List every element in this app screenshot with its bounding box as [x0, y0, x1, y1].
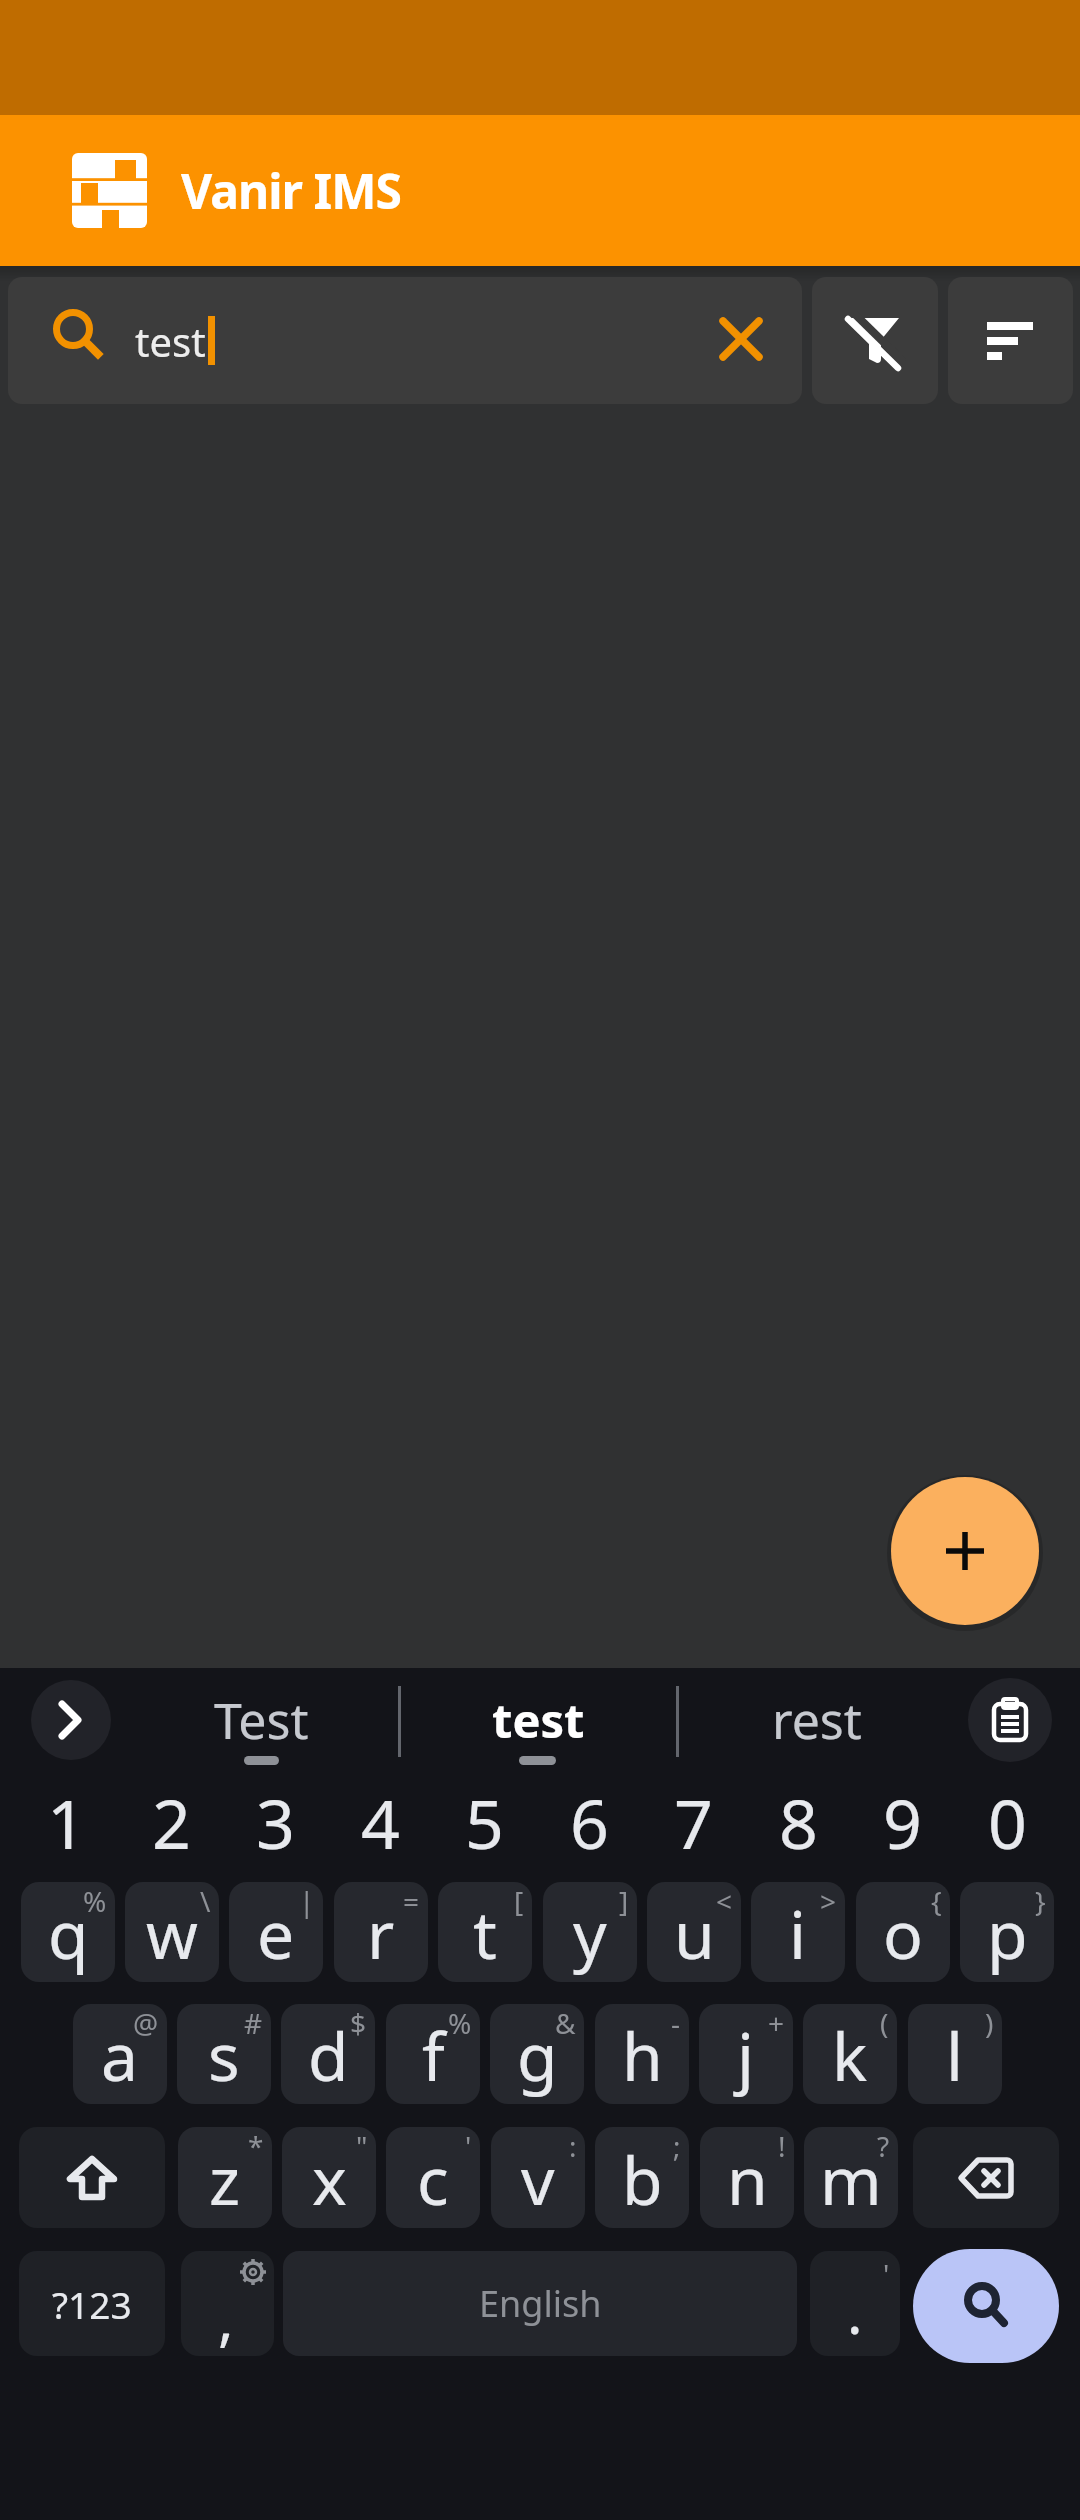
button[interactable]: t [438, 1882, 532, 1982]
staticText: ; [673, 2127, 681, 2165]
staticText: c [417, 2134, 449, 2224]
staticText: b [622, 2134, 663, 2224]
button[interactable]: rest [717, 1680, 917, 1760]
button[interactable]: g [490, 2004, 584, 2104]
button[interactable]: Test [161, 1680, 361, 1760]
button[interactable] [948, 277, 1073, 404]
button[interactable]: u [647, 1882, 741, 1982]
staticText: ' [883, 2255, 890, 2293]
staticText: ?123 [52, 2279, 132, 2329]
button[interactable]: o [856, 1882, 950, 1982]
staticText: y [573, 1888, 607, 1978]
staticText: & [555, 2004, 576, 2042]
staticText: h [622, 2010, 663, 2100]
staticText: 9 [883, 1776, 922, 1868]
button[interactable]: z [178, 2127, 272, 2228]
staticText: o [883, 1888, 923, 1978]
staticText: Test [214, 1686, 309, 1754]
staticText: ? [877, 2127, 890, 2165]
button[interactable]: l [908, 2004, 1002, 2104]
button[interactable]: r [334, 1882, 428, 1982]
staticText: 5 [465, 1776, 504, 1868]
button[interactable]: c [386, 2127, 480, 2228]
button[interactable]: ?123 [19, 2251, 165, 2356]
button[interactable]: q [21, 1882, 115, 1982]
button[interactable] [812, 277, 938, 404]
button[interactable]: h [595, 2004, 689, 2104]
staticText: m [820, 2134, 882, 2224]
staticText: x [312, 2134, 347, 2224]
staticText: i [789, 1888, 807, 1978]
staticText: ) [985, 2004, 994, 2042]
button[interactable]: k [803, 2004, 897, 2104]
button[interactable]: 0 [955, 1776, 1059, 1868]
staticText: r [367, 1888, 395, 1978]
staticText: . [847, 2272, 863, 2351]
button[interactable]: a [73, 2004, 167, 2104]
button[interactable]: e [229, 1882, 323, 1982]
button[interactable] [913, 2249, 1059, 2363]
button[interactable] [968, 1678, 1052, 1762]
staticText: v [521, 2134, 555, 2224]
button[interactable]: m [804, 2127, 898, 2228]
staticText: 2 [152, 1776, 191, 1868]
button[interactable]: 6 [537, 1776, 641, 1868]
staticText: [ [514, 1882, 524, 1920]
button[interactable]: s [177, 2004, 271, 2104]
staticText: f [422, 2010, 445, 2100]
button[interactable] [31, 1680, 111, 1760]
button[interactable]: p [960, 1882, 1054, 1982]
staticText: t [473, 1888, 497, 1978]
button[interactable]: f [386, 2004, 480, 2104]
staticText: 7 [674, 1776, 713, 1868]
staticText: k [832, 2010, 868, 2100]
staticText: n [727, 2134, 768, 2224]
staticText: Vanir IMS [181, 158, 401, 223]
staticText: $ [350, 2004, 367, 2042]
button[interactable]: English [283, 2251, 797, 2356]
staticText: + [768, 2004, 785, 2042]
button[interactable] [891, 1477, 1039, 1625]
staticText: % [448, 2004, 472, 2042]
staticText: - [671, 2004, 681, 2042]
staticText: w [146, 1888, 198, 1978]
button[interactable]: ' [810, 2251, 900, 2356]
button[interactable]: 4 [328, 1776, 432, 1868]
button[interactable] [19, 2127, 165, 2228]
staticText: q [48, 1888, 89, 1978]
staticText: test [492, 1688, 585, 1752]
staticText: l [946, 2010, 964, 2100]
button[interactable]: 8 [746, 1776, 850, 1868]
button[interactable]: 2 [119, 1776, 223, 1868]
staticText: 1 [47, 1776, 86, 1868]
button[interactable]: j [699, 2004, 793, 2104]
staticText: # [244, 2004, 263, 2042]
button[interactable]: test [8, 277, 802, 404]
staticText: ! [778, 2127, 786, 2165]
button[interactable]: d [281, 2004, 375, 2104]
staticText: a [101, 2010, 139, 2100]
button[interactable]: , [181, 2251, 274, 2356]
button[interactable]: 3 [223, 1776, 327, 1868]
button[interactable]: v [491, 2127, 585, 2228]
button[interactable]: 7 [641, 1776, 745, 1868]
button[interactable]: b [595, 2127, 689, 2228]
staticText: = [403, 1882, 420, 1920]
staticText: 0 [988, 1776, 1027, 1868]
button[interactable]: w [125, 1882, 219, 1982]
staticText: 6 [570, 1776, 609, 1868]
button[interactable]: 5 [432, 1776, 536, 1868]
staticText: : [569, 2127, 577, 2165]
staticText: " [356, 2127, 368, 2165]
staticText: z [209, 2134, 241, 2224]
button[interactable]: 9 [850, 1776, 954, 1868]
button[interactable]: i [751, 1882, 845, 1982]
button[interactable]: 1 [14, 1776, 118, 1868]
button[interactable] [913, 2127, 1059, 2228]
staticText: { [931, 1882, 942, 1920]
button[interactable]: x [282, 2127, 376, 2228]
staticText: e [257, 1888, 295, 1978]
button[interactable]: y [543, 1882, 637, 1982]
button[interactable]: n [700, 2127, 794, 2228]
button[interactable]: test [438, 1680, 638, 1760]
